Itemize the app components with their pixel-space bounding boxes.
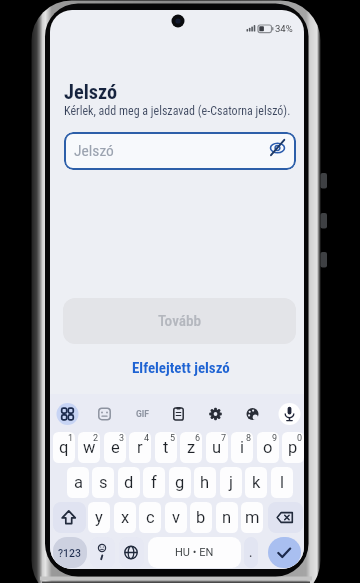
staticText: . <box>249 546 253 560</box>
staticText: 34% <box>275 23 293 34</box>
button[interactable]: i <box>231 432 253 463</box>
staticText: h <box>200 473 210 492</box>
staticText: 7 <box>221 433 227 444</box>
button[interactable] <box>277 402 302 427</box>
button[interactable]: Jelszó <box>64 132 296 170</box>
button[interactable] <box>90 537 115 568</box>
button[interactable]: HU • EN <box>148 537 241 568</box>
button[interactable]: p <box>282 432 304 463</box>
button[interactable]: n <box>216 502 238 533</box>
staticText: Tovább <box>158 312 202 330</box>
staticText: z <box>187 438 196 457</box>
button[interactable]: c <box>139 502 161 533</box>
staticText: w <box>83 438 96 457</box>
staticText: 5 <box>170 433 176 444</box>
button[interactable]: Elfelejtett jelszó <box>131 359 231 377</box>
button[interactable] <box>55 402 80 427</box>
button[interactable]: o <box>257 432 279 463</box>
button[interactable] <box>119 537 144 568</box>
button[interactable]: t <box>155 432 177 463</box>
staticText: 2 <box>93 433 99 444</box>
staticText: g <box>175 473 185 492</box>
staticText: q <box>59 438 69 457</box>
staticText: f <box>151 473 157 492</box>
staticText: n <box>222 508 232 527</box>
button[interactable] <box>265 136 290 161</box>
staticText: y <box>95 508 103 527</box>
button[interactable]: y <box>88 502 110 533</box>
staticText: 0 <box>297 433 303 444</box>
button[interactable]: q <box>53 432 75 463</box>
button[interactable] <box>268 537 301 568</box>
button[interactable]: ?123 <box>53 537 87 568</box>
staticText: s <box>99 473 108 492</box>
button[interactable]: f <box>143 467 165 498</box>
button[interactable]: w <box>78 432 100 463</box>
staticText: ?123 <box>58 547 82 559</box>
staticText: e <box>111 438 120 457</box>
button[interactable]: z <box>180 432 202 463</box>
button[interactable]: h <box>194 467 216 498</box>
staticText: m <box>245 508 260 527</box>
staticText: p <box>288 438 298 457</box>
staticText: r <box>137 438 143 457</box>
staticText: t <box>163 438 169 457</box>
staticText: 4 <box>144 433 150 444</box>
staticText: 9 <box>272 433 278 444</box>
staticText: d <box>124 473 134 492</box>
staticText: c <box>146 508 155 527</box>
button[interactable]: . <box>244 537 258 568</box>
button[interactable] <box>268 502 303 533</box>
button[interactable] <box>129 402 154 427</box>
staticText: 3 <box>119 433 125 444</box>
button[interactable]: x <box>114 502 136 533</box>
staticText: x <box>121 508 130 527</box>
button[interactable]: Tovább <box>63 298 296 344</box>
staticText: Elfelejtett jelszó <box>132 359 230 377</box>
staticText: HU • EN <box>175 546 214 559</box>
staticText: a <box>74 473 83 492</box>
button[interactable]: m <box>241 502 263 533</box>
button[interactable] <box>203 402 228 427</box>
button[interactable] <box>92 402 117 427</box>
staticText: k <box>252 473 261 492</box>
button[interactable]: a <box>67 467 89 498</box>
button[interactable]: b <box>190 502 212 533</box>
staticText: 1 <box>68 433 74 444</box>
staticText: b <box>196 508 206 527</box>
button[interactable]: s <box>92 467 114 498</box>
staticText: i <box>240 438 245 457</box>
staticText: u <box>212 438 222 457</box>
button[interactable]: d <box>118 467 140 498</box>
button[interactable] <box>240 402 265 427</box>
staticText: l <box>280 473 285 492</box>
staticText: 8 <box>246 433 252 444</box>
button[interactable]: e <box>104 432 126 463</box>
staticText: o <box>263 438 273 457</box>
staticText: Jelszó <box>74 142 114 160</box>
button[interactable]: u <box>206 432 228 463</box>
button[interactable]: v <box>165 502 187 533</box>
staticText: 6 <box>195 433 201 444</box>
button[interactable]: r <box>129 432 151 463</box>
staticText: GIF <box>136 409 149 419</box>
staticText: Kérlek, add meg a jelszavad (e-Csatorna … <box>64 104 291 118</box>
button[interactable]: j <box>220 467 242 498</box>
button[interactable] <box>53 502 86 533</box>
button[interactable] <box>166 402 191 427</box>
staticText: v <box>172 508 180 527</box>
button[interactable]: g <box>169 467 191 498</box>
button[interactable]: l <box>271 467 293 498</box>
button[interactable]: k <box>245 467 267 498</box>
staticText: Jelszó <box>64 80 118 104</box>
staticText: j <box>229 473 233 492</box>
